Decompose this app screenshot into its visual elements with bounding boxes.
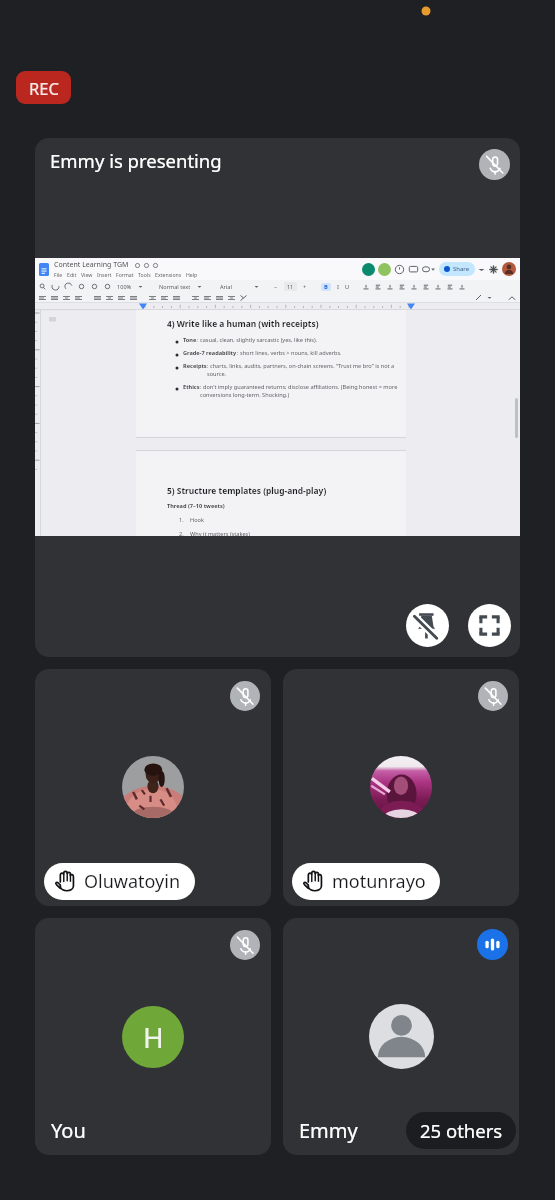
staticText: − <box>274 283 278 291</box>
staticText: 100% <box>117 283 132 291</box>
staticText: Tools <box>138 271 151 278</box>
staticText: Content Learning TGM <box>54 260 129 270</box>
button[interactable]: Oluwatoyin <box>44 863 195 900</box>
staticText: : don't imply guaranteed returns; disclo… <box>200 383 398 399</box>
staticText: I <box>337 283 339 291</box>
staticText: You <box>51 1117 86 1144</box>
staticText: REC <box>29 77 59 99</box>
staticText: Edit <box>67 271 77 278</box>
staticText: 11 <box>287 283 294 290</box>
staticText: 2. <box>179 530 184 538</box>
staticText: Thread (7–10 tweets) <box>167 502 225 510</box>
button[interactable]: Unpin <box>406 604 449 647</box>
staticText: Tone <box>183 336 197 344</box>
staticText: Emmy is presenting <box>50 148 222 173</box>
staticText: : short lines, verbs > nouns, kill adver… <box>237 349 342 357</box>
staticText: Normal text <box>159 283 191 291</box>
button[interactable]: Muted <box>230 681 260 711</box>
button[interactable]: Speaking <box>477 929 508 960</box>
staticText: Format <box>116 271 134 278</box>
staticText: B <box>324 283 328 291</box>
staticText: Grade-7 readability <box>183 349 237 357</box>
button[interactable]: motunrayo <box>292 863 440 900</box>
staticText: motunrayo <box>332 869 426 894</box>
button[interactable]: Speaking <box>283 918 519 1155</box>
staticText: Extensions <box>155 271 182 278</box>
staticText: Arial <box>220 283 232 291</box>
staticText: 4) Write like a human (with receipts) <box>167 318 319 329</box>
staticText: : charts, links, audits, partners, on-ch… <box>207 362 398 378</box>
staticText: Receipts <box>183 362 207 370</box>
staticText: U <box>345 283 350 291</box>
button[interactable]: Microphone muted <box>479 149 510 180</box>
button[interactable]: Muted <box>478 681 508 711</box>
staticText: Oluwatoyin <box>84 869 181 894</box>
button[interactable]: Muted <box>230 930 260 960</box>
staticText: Insert <box>97 271 112 278</box>
button[interactable]: Muted <box>35 669 271 906</box>
button[interactable]: REC <box>16 71 71 104</box>
staticText: Why it matters (stakes) <box>190 530 250 538</box>
staticText: : casual, clean, slightly sarcastic (yes… <box>197 336 318 344</box>
staticText: File <box>54 271 63 278</box>
staticText: 5) Structure templates (plug-and-play) <box>167 485 327 496</box>
staticText: Ethics <box>183 383 200 391</box>
staticText: + <box>303 283 307 291</box>
button[interactable]: 25 others <box>406 1112 516 1149</box>
staticText: Emmy <box>299 1117 358 1144</box>
staticText: Share <box>453 265 470 273</box>
button[interactable]: Full screen <box>468 604 511 647</box>
staticText: H <box>143 1018 164 1056</box>
staticText: Help <box>186 271 198 278</box>
button[interactable]: Muted <box>283 669 519 906</box>
staticText: Hook <box>190 516 204 524</box>
staticText: 1. <box>179 516 184 524</box>
staticText: 25 others <box>420 1118 503 1143</box>
button[interactable]: H <box>35 918 271 1155</box>
staticText: View <box>81 271 93 278</box>
button[interactable]: Emmy is presenting <box>35 138 520 657</box>
